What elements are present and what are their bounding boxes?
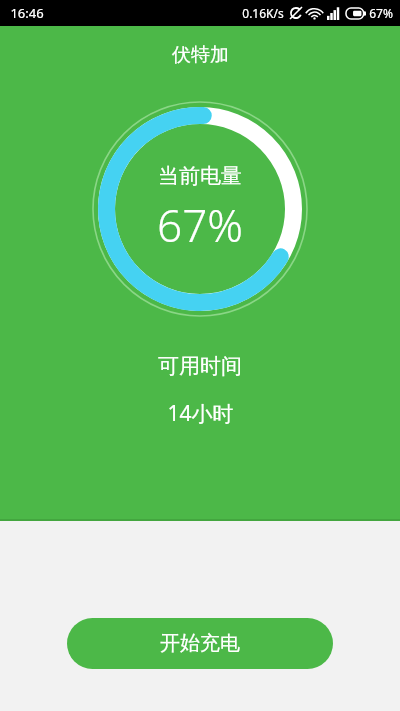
staticText: 当前电量 <box>158 163 242 189</box>
staticText: 可用时间 <box>158 353 242 379</box>
staticText: 0.16K/s <box>242 5 284 21</box>
staticText: 14小时 <box>167 399 234 428</box>
staticText: 67% <box>157 195 243 255</box>
button[interactable]: 开始充电 <box>67 618 333 669</box>
staticText: 67% <box>369 5 393 21</box>
staticText: 开始充电 <box>160 631 240 656</box>
staticText: 16:46 <box>10 4 44 22</box>
staticText: 伏特加 <box>172 43 229 67</box>
